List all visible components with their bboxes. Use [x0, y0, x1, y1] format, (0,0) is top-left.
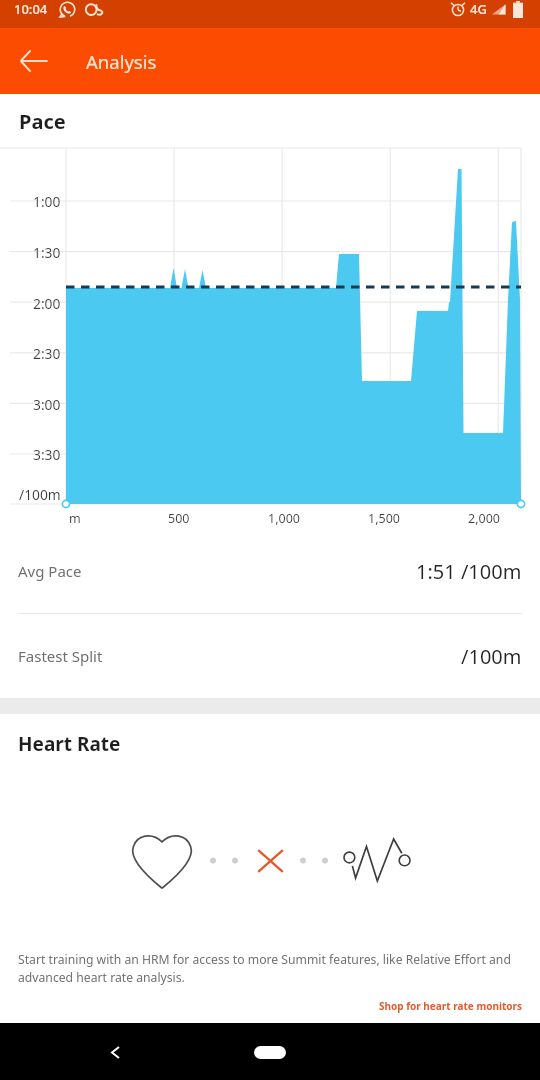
staticText: 10:04: [14, 0, 48, 18]
staticText: Shop for heart rate monitors: [379, 999, 522, 1013]
staticText: 1:30: [33, 243, 61, 262]
staticText: Analysis: [86, 49, 157, 74]
staticText: 1:00: [33, 192, 61, 211]
staticText: Fastest Split: [18, 646, 103, 666]
button[interactable]: Home: [238, 1032, 302, 1072]
staticText: /100m: [461, 643, 522, 670]
staticText: m: [69, 510, 81, 527]
staticText: 2:00: [33, 294, 61, 313]
staticText: 3:00: [33, 395, 61, 414]
button[interactable]: Fastest Split: [0, 614, 540, 698]
staticText: Pace: [19, 108, 66, 134]
staticText: 2:30: [33, 344, 61, 363]
staticText: 1,000: [268, 510, 300, 527]
staticText: Start training with an HRM for access to…: [18, 951, 511, 985]
staticText: /100m: [19, 485, 61, 504]
staticText: 1:51 /100m: [416, 558, 522, 585]
button[interactable]: Back: [0, 28, 68, 94]
staticText: 3:30: [33, 445, 61, 464]
button[interactable]: Avg Pace: [0, 529, 540, 613]
staticText: 1,500: [368, 510, 400, 527]
staticText: 500: [168, 510, 190, 527]
button[interactable]: Shop for heart rate monitors: [361, 997, 540, 1015]
staticText: 4G: [470, 0, 487, 18]
button[interactable]: Back: [95, 1032, 135, 1072]
staticText: Avg Pace: [18, 561, 82, 581]
staticText: 2,000: [468, 510, 500, 527]
staticText: Heart Rate: [18, 731, 121, 757]
